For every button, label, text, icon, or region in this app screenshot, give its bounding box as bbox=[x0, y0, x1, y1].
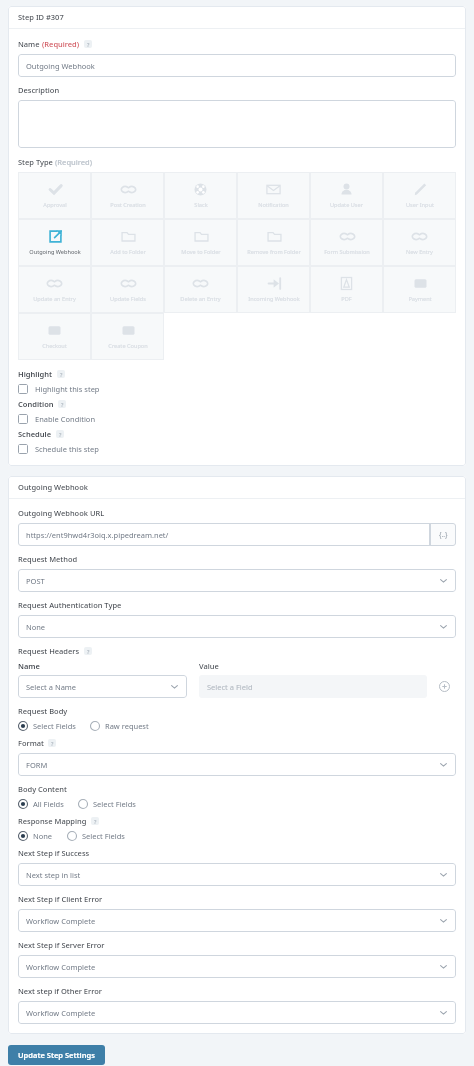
staticText: https://ent9hwd4r3oiq.x.pipedream.net/ bbox=[26, 530, 169, 540]
staticText: Description bbox=[18, 85, 60, 95]
button[interactable]: Help bbox=[58, 400, 66, 408]
button[interactable]: Delete an Entry bbox=[164, 266, 237, 313]
staticText: Workflow Complete bbox=[26, 962, 96, 972]
button[interactable]: None bbox=[18, 615, 456, 638]
staticText: New Entry bbox=[406, 248, 433, 256]
button[interactable]: Help bbox=[84, 40, 92, 48]
button[interactable]: Add to Folder bbox=[91, 219, 164, 266]
button[interactable]: All Fields bbox=[18, 797, 64, 811]
staticText: Add to Folder bbox=[110, 248, 146, 256]
button[interactable]: Help bbox=[84, 647, 92, 655]
staticText: (Required) bbox=[42, 39, 80, 49]
button[interactable]: Help bbox=[56, 430, 64, 438]
button[interactable]: Select a Field bbox=[199, 675, 427, 698]
staticText: Slack bbox=[194, 201, 208, 209]
staticText: Format bbox=[18, 738, 44, 748]
staticText: Update User bbox=[330, 201, 363, 209]
button[interactable]: Update an Entry bbox=[18, 266, 91, 313]
button[interactable]: Slack bbox=[164, 172, 237, 219]
staticText: Request Headers bbox=[18, 646, 80, 656]
button[interactable]: Schedule this step bbox=[18, 442, 456, 456]
button[interactable]: Approval bbox=[18, 172, 91, 219]
button[interactable]: Help bbox=[91, 817, 99, 825]
button[interactable]: Help bbox=[57, 370, 65, 378]
staticText: Delete an Entry bbox=[180, 295, 221, 303]
button[interactable]: Workflow Complete bbox=[18, 955, 456, 978]
button[interactable]: Notification bbox=[237, 172, 310, 219]
staticText: ? bbox=[59, 431, 62, 438]
button[interactable]: Select Fields bbox=[67, 829, 125, 843]
staticText: ? bbox=[87, 648, 90, 655]
button[interactable]: Outgoing Webhook bbox=[18, 54, 456, 77]
staticText: Next Step if Server Error bbox=[18, 940, 105, 950]
button[interactable]: User Input bbox=[383, 172, 456, 219]
button[interactable]: Checkout bbox=[18, 313, 91, 360]
button[interactable]: Insert merge tag bbox=[430, 523, 456, 546]
staticText: Payment bbox=[408, 295, 432, 303]
button[interactable] bbox=[18, 100, 456, 148]
button[interactable]: Create Coupon bbox=[91, 313, 164, 360]
staticText: Raw request bbox=[105, 721, 149, 731]
button[interactable]: Post Creation bbox=[91, 172, 164, 219]
button[interactable]: Outgoing Webhook bbox=[18, 219, 91, 266]
staticText: Form Submission bbox=[324, 248, 370, 256]
button[interactable]: Payment bbox=[383, 266, 456, 313]
staticText: Outgoing Webhook bbox=[26, 61, 95, 71]
button[interactable]: Update Fields bbox=[91, 266, 164, 313]
button[interactable]: Workflow Complete bbox=[18, 909, 456, 932]
staticText: Schedule bbox=[18, 429, 52, 439]
staticText: Request Authentication Type bbox=[18, 600, 122, 610]
button[interactable]: Highlight this step bbox=[18, 382, 456, 396]
button[interactable]: Workflow Complete bbox=[18, 1001, 456, 1024]
button[interactable]: PDF bbox=[310, 266, 383, 313]
button[interactable]: Form Submission bbox=[310, 219, 383, 266]
button[interactable]: Raw request bbox=[90, 719, 149, 733]
button[interactable]: Enable Condition bbox=[18, 412, 456, 426]
staticText: Next Step if Client Error bbox=[18, 894, 103, 904]
staticText: {..} bbox=[439, 530, 448, 539]
staticText: Name bbox=[18, 661, 40, 671]
staticText: User Input bbox=[406, 201, 434, 209]
button[interactable]: Select Fields bbox=[18, 719, 76, 733]
staticText: Update Step Settings bbox=[18, 1050, 95, 1060]
staticText: POST bbox=[26, 576, 45, 586]
staticText: Checkout bbox=[42, 342, 67, 350]
staticText: Step Type bbox=[18, 157, 53, 167]
button[interactable]: Select Fields bbox=[78, 797, 136, 811]
staticText: Incoming Webhook bbox=[248, 295, 300, 303]
staticText: Post Creation bbox=[110, 201, 146, 209]
button[interactable]: Add header bbox=[433, 675, 456, 698]
button[interactable]: https://ent9hwd4r3oiq.x.pipedream.net/ bbox=[18, 523, 430, 546]
staticText: Outgoing Webhook bbox=[29, 248, 81, 256]
button[interactable]: Incoming Webhook bbox=[237, 266, 310, 313]
staticText: Highlight bbox=[18, 369, 53, 379]
button[interactable]: Remove from Folder bbox=[237, 219, 310, 266]
staticText: Request Method bbox=[18, 554, 78, 564]
button[interactable]: New Entry bbox=[383, 219, 456, 266]
staticText: ? bbox=[87, 41, 90, 48]
staticText: Name bbox=[18, 39, 40, 49]
staticText: Select a Field bbox=[207, 682, 253, 692]
button[interactable]: Update Step Settings bbox=[8, 1045, 105, 1065]
staticText: Update Fields bbox=[110, 295, 146, 303]
button[interactable]: Help bbox=[48, 739, 56, 747]
staticText: Move to Folder bbox=[181, 248, 221, 256]
button[interactable]: Select a Name bbox=[18, 675, 187, 698]
staticText: Next step in list bbox=[26, 870, 81, 880]
staticText: PDF bbox=[341, 295, 352, 303]
button[interactable]: None bbox=[18, 829, 53, 843]
staticText: Request Body bbox=[18, 706, 68, 716]
staticText: Step ID #307 bbox=[18, 12, 64, 22]
staticText: Remove from Folder bbox=[247, 248, 301, 256]
staticText: Next step if Other Error bbox=[18, 986, 102, 996]
staticText: All Fields bbox=[33, 799, 64, 809]
staticText: ? bbox=[51, 740, 54, 747]
button[interactable]: FORM bbox=[18, 753, 456, 776]
staticText: Enable Condition bbox=[35, 414, 96, 424]
button[interactable]: Move to Folder bbox=[164, 219, 237, 266]
staticText: Approval bbox=[43, 201, 67, 209]
button[interactable]: POST bbox=[18, 569, 456, 592]
button[interactable]: Next step in list bbox=[18, 863, 456, 886]
staticText: Value bbox=[199, 661, 219, 671]
button[interactable]: Update User bbox=[310, 172, 383, 219]
